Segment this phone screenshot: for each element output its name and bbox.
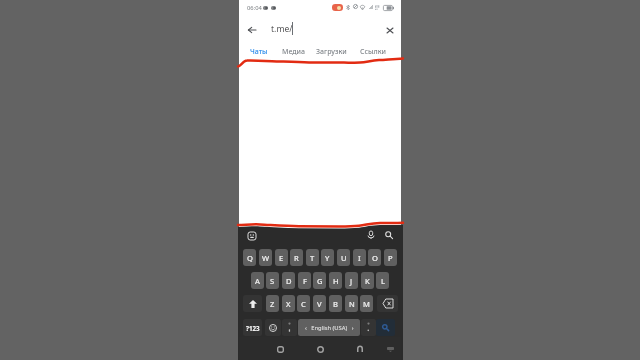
staticText: O — [372, 253, 378, 263]
staticText: I — [358, 253, 361, 263]
staticText: V — [317, 299, 322, 309]
button[interactable]: J — [345, 272, 358, 289]
button[interactable]: Shift — [243, 295, 262, 312]
staticText: C — [301, 299, 306, 309]
button[interactable] — [282, 319, 297, 336]
button[interactable]: ?123 — [243, 319, 262, 336]
staticText: M — [363, 299, 370, 309]
button[interactable]: Backspace — [377, 295, 398, 312]
button[interactable]: X — [282, 295, 295, 312]
button[interactable]: U — [337, 249, 350, 266]
staticText: F — [303, 276, 307, 286]
button[interactable]: C — [297, 295, 310, 312]
button[interactable]: S — [266, 272, 279, 289]
staticText: t.me/ — [271, 23, 293, 35]
button[interactable]: Search — [383, 229, 394, 240]
staticText: Чаты — [250, 47, 268, 57]
button[interactable]: F — [298, 272, 311, 289]
staticText: E — [279, 253, 284, 263]
button[interactable]: Чаты — [250, 44, 268, 60]
staticText: D — [286, 276, 292, 286]
button[interactable]: Загрузки — [316, 44, 347, 60]
button[interactable]: Stickers — [246, 230, 257, 241]
staticText: K — [365, 276, 370, 286]
button[interactable]: Voice input — [365, 229, 376, 240]
staticText: N — [349, 299, 355, 309]
staticText: Z — [270, 299, 275, 309]
button[interactable]: Recent apps — [272, 341, 288, 357]
button[interactable]: Q — [243, 249, 256, 266]
staticText: Ссылки — [360, 47, 387, 57]
button[interactable]: Emoji — [265, 319, 281, 336]
staticText: P — [388, 253, 393, 263]
staticText: T — [310, 253, 315, 263]
button[interactable]: W — [259, 249, 272, 266]
staticText: Загрузки — [316, 47, 347, 57]
button[interactable]: Home — [312, 341, 328, 357]
button[interactable]: Ссылки — [360, 44, 387, 60]
button[interactable]: E — [275, 249, 288, 266]
button[interactable]: Search — [376, 319, 395, 336]
staticText: 06:04 — [247, 4, 262, 12]
staticText: ‹ English (USA) › — [305, 324, 354, 332]
staticText: A — [255, 276, 260, 286]
staticText: G — [317, 276, 323, 286]
button[interactable]: Back — [352, 341, 368, 357]
button[interactable]: V — [313, 295, 326, 312]
button[interactable]: A — [251, 272, 264, 289]
button[interactable]: Hide keyboard — [382, 341, 398, 357]
button[interactable]: Back — [243, 14, 261, 44]
staticText: Y — [325, 253, 330, 263]
staticText: W — [262, 253, 270, 263]
staticText: S — [270, 276, 275, 286]
staticText: Q — [247, 253, 253, 263]
staticText: H — [333, 276, 339, 286]
button[interactable]: K — [361, 272, 374, 289]
button[interactable]: O — [368, 249, 381, 266]
staticText: U — [341, 253, 347, 263]
button[interactable]: ‹ English (USA) › — [298, 319, 360, 336]
button[interactable]: R — [290, 249, 303, 266]
button[interactable]: D — [282, 272, 295, 289]
button[interactable]: N — [345, 295, 358, 312]
button[interactable]: Y — [321, 249, 334, 266]
button[interactable]: L — [376, 272, 389, 289]
button[interactable]: T — [306, 249, 319, 266]
staticText: L — [381, 276, 385, 286]
button[interactable]: H — [329, 272, 342, 289]
staticText: X — [286, 299, 291, 309]
staticText: J — [350, 276, 353, 286]
staticText: Медиа — [282, 47, 306, 57]
button[interactable] — [361, 319, 376, 336]
button[interactable]: P — [384, 249, 397, 266]
button[interactable]: Clear search — [381, 14, 398, 44]
button[interactable]: I — [353, 249, 366, 266]
button[interactable]: Z — [266, 295, 279, 312]
button[interactable]: Медиа — [282, 44, 306, 60]
staticText: R — [294, 253, 299, 263]
button[interactable]: M — [360, 295, 373, 312]
staticText: B — [333, 299, 338, 309]
button[interactable]: G — [313, 272, 326, 289]
staticText: ?123 — [246, 324, 260, 332]
button[interactable]: B — [329, 295, 342, 312]
